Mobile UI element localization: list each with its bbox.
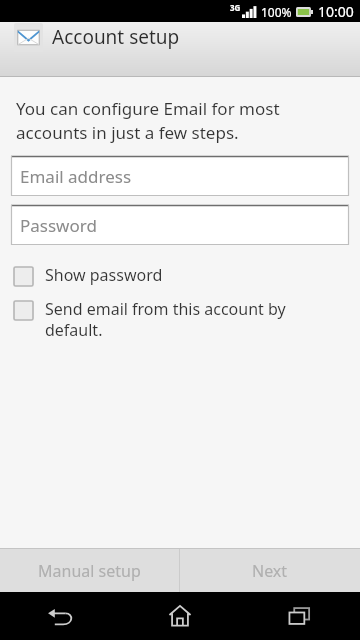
button[interactable]: Back — [0, 592, 120, 640]
staticText: 100% — [261, 4, 292, 20]
staticText: Next — [252, 560, 288, 582]
staticText: Show password — [45, 264, 163, 286]
button[interactable]: Next — [180, 549, 360, 592]
button[interactable]: Recent apps — [240, 592, 360, 640]
button[interactable]: Email address — [11, 156, 349, 196]
staticText: 10:00 — [318, 2, 354, 21]
staticText: You can configure Email for most account… — [16, 97, 280, 144]
staticText: Password — [20, 214, 97, 237]
button[interactable]: Password — [11, 205, 349, 245]
staticText: Account setup — [52, 24, 180, 50]
staticText: Email address — [20, 165, 132, 188]
button[interactable]: Manual setup — [0, 549, 179, 592]
button[interactable]: Home — [120, 592, 240, 640]
staticText: Send email from this account by default. — [45, 298, 286, 341]
button[interactable]: Send email from this account by default. — [14, 298, 346, 341]
staticText: 3G — [230, 2, 241, 13]
button[interactable]: Show password — [14, 264, 346, 286]
staticText: Manual setup — [38, 560, 141, 582]
